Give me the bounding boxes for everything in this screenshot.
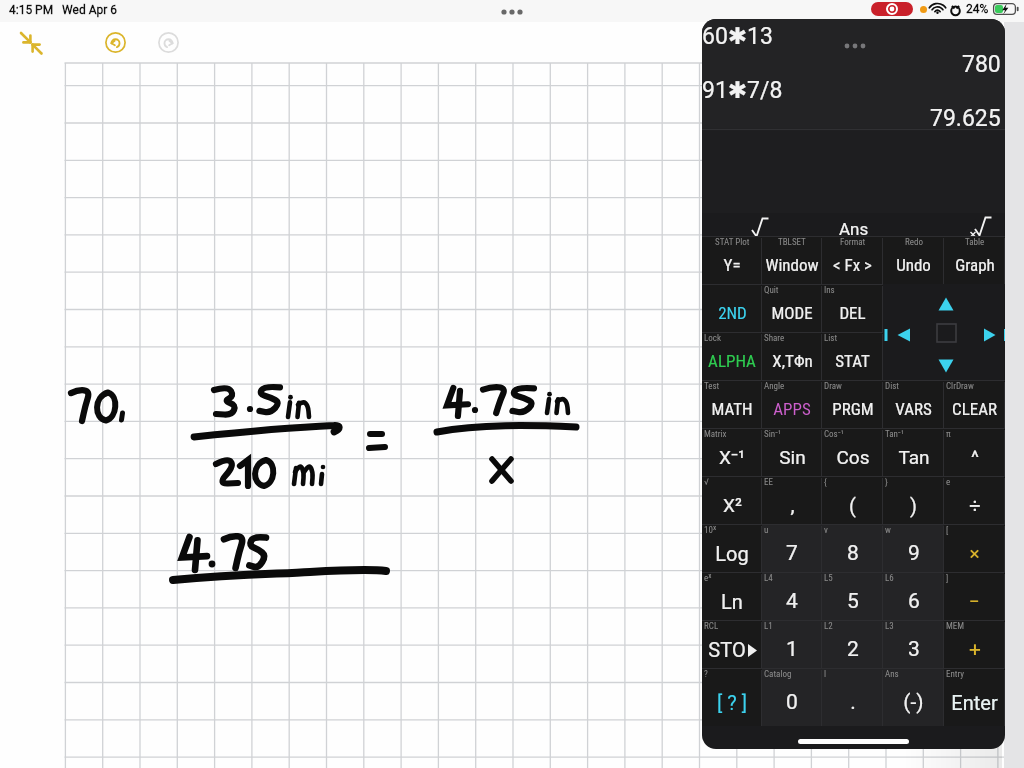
staticText: 8 — [847, 541, 859, 566]
staticText: 6 — [908, 589, 920, 614]
button[interactable]: Nth root — [904, 213, 1005, 239]
staticText: Share — [764, 333, 785, 344]
button[interactable]: w — [883, 524, 944, 572]
button[interactable]: ] — [944, 572, 1005, 620]
button[interactable]: { — [822, 476, 883, 524]
button[interactable]: [ — [944, 524, 1005, 572]
staticText: (-) — [903, 690, 924, 715]
button[interactable]: e — [944, 476, 1005, 524]
button[interactable]: STAT Plot — [702, 236, 762, 284]
staticText: 0 — [786, 690, 798, 715]
button[interactable]: L6 — [883, 572, 944, 620]
button[interactable]: ? — [702, 668, 762, 726]
staticText: MODE — [771, 303, 813, 323]
button[interactable]: Redo — [158, 32, 179, 53]
staticText: 1 — [786, 637, 798, 662]
staticText: APPS — [773, 399, 811, 419]
button[interactable]: Quit — [762, 284, 822, 332]
staticText: ÷ — [969, 494, 981, 517]
staticText: √ — [704, 477, 709, 488]
button[interactable]: Square root — [702, 213, 803, 239]
button[interactable]: eˣ — [702, 572, 762, 620]
staticText: × — [969, 542, 980, 564]
staticText: 79.625 — [930, 105, 1001, 132]
staticText: Ans — [839, 219, 869, 239]
staticText: VARS — [895, 399, 932, 419]
button[interactable]: 2ND — [702, 284, 762, 332]
button[interactable]: Redo — [883, 236, 944, 284]
staticText: X⁻¹ — [719, 446, 745, 468]
button[interactable]: L1 — [762, 620, 822, 668]
button[interactable]: Entry — [944, 668, 1005, 726]
button[interactable]: L3 — [883, 620, 944, 668]
button[interactable]: L2 — [822, 620, 883, 668]
button[interactable]: } — [883, 476, 944, 524]
button[interactable]: Left — [892, 321, 926, 349]
button[interactable]: Undo — [105, 32, 126, 53]
button[interactable]: 10ˣ — [702, 524, 762, 572]
staticText: l — [824, 669, 827, 680]
button[interactable]: Matrix — [702, 428, 762, 476]
button[interactable]: u — [762, 524, 822, 572]
button[interactable]: Right — [966, 321, 1000, 349]
staticText: ALPHA — [708, 351, 756, 371]
staticText: Sin⁻¹ — [764, 429, 782, 440]
button[interactable]: MEM — [944, 620, 1005, 668]
staticText: Matrix — [704, 429, 727, 440]
button[interactable]: Lock — [702, 332, 762, 380]
button[interactable]: Dist — [883, 380, 944, 428]
staticText: Sin — [779, 446, 806, 468]
staticText: Dist — [885, 381, 899, 392]
button[interactable]: Ins — [822, 284, 883, 332]
staticText: Enter — [951, 691, 998, 714]
button[interactable]: L4 — [762, 572, 822, 620]
staticText: Test — [704, 381, 720, 392]
button[interactable]: Screen recording — [871, 2, 913, 16]
button[interactable]: List — [822, 332, 883, 380]
staticText: EE — [764, 477, 773, 488]
staticText: [ — [946, 525, 949, 536]
button[interactable]: RCL — [702, 620, 762, 668]
staticText: 60✱13 — [702, 23, 773, 50]
staticText: L2 — [824, 621, 833, 632]
button[interactable]: Share — [762, 332, 822, 380]
staticText: 780 — [962, 51, 1001, 78]
staticText: Y= — [723, 255, 741, 275]
button[interactable]: Sin⁻¹ — [762, 428, 822, 476]
button[interactable]: Format — [822, 236, 883, 284]
button[interactable]: Tan⁻¹ — [883, 428, 944, 476]
button[interactable]: TBLSET — [762, 236, 822, 284]
staticText: Window — [765, 255, 819, 275]
staticText: MATH — [711, 399, 753, 419]
staticText: CLEAR — [952, 399, 997, 419]
button[interactable]: v — [822, 524, 883, 572]
staticText: 24% — [966, 2, 989, 16]
button[interactable]: Collapse — [17, 29, 47, 59]
button[interactable]: ClrDraw — [944, 380, 1005, 428]
button[interactable]: Catalog — [762, 668, 822, 726]
button[interactable]: Cos⁻¹ — [822, 428, 883, 476]
button[interactable]: EE — [762, 476, 822, 524]
staticText: Log — [715, 542, 749, 565]
button[interactable]: Ans — [803, 213, 904, 239]
button[interactable]: Down — [932, 349, 960, 383]
button[interactable]: √ — [702, 476, 762, 524]
button[interactable]: Ans — [883, 668, 944, 726]
staticText: DEL — [839, 303, 866, 323]
staticText: X,TΦn — [772, 351, 813, 371]
button[interactable]: Angle — [762, 380, 822, 428]
staticText: Tan⁻¹ — [885, 429, 904, 440]
staticText: X² — [723, 494, 742, 516]
button[interactable]: π — [944, 428, 1005, 476]
staticText: STAT Plot — [715, 237, 750, 248]
button[interactable]: Test — [702, 380, 762, 428]
staticText: TBLSET — [778, 237, 806, 248]
staticText: L5 — [824, 573, 833, 584]
button[interactable]: Table — [944, 236, 1005, 284]
button[interactable]: Select — [934, 321, 958, 347]
staticText: Ln — [721, 590, 743, 613]
button[interactable]: Up — [932, 287, 960, 321]
button[interactable]: l — [822, 668, 883, 726]
button[interactable]: Draw — [822, 380, 883, 428]
button[interactable]: L5 — [822, 572, 883, 620]
